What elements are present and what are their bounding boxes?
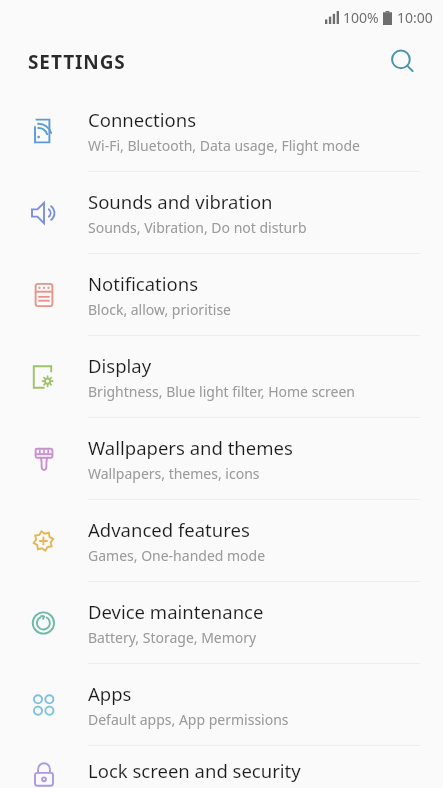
button[interactable]: Search xyxy=(381,40,425,84)
staticText: Default apps, App permissions xyxy=(88,710,289,729)
staticText: Block, allow, prioritise xyxy=(88,300,232,319)
button[interactable]: Advanced features xyxy=(0,500,443,581)
staticText: Sounds, Vibration, Do not disturb xyxy=(88,218,307,237)
staticText: 100% xyxy=(343,8,379,27)
staticText: Wi-Fi, Bluetooth, Data usage, Flight mod… xyxy=(88,136,361,155)
staticText: Advanced features xyxy=(88,517,250,542)
staticText: Battery, Storage, Memory xyxy=(88,628,257,647)
button[interactable]: Notifications xyxy=(0,254,443,335)
staticText: Wallpapers, themes, icons xyxy=(88,464,260,483)
staticText: Device maintenance xyxy=(88,599,264,624)
staticText: Sounds and vibration xyxy=(88,189,273,214)
staticText: Apps xyxy=(88,681,132,706)
staticText: Lock screen and security xyxy=(88,758,301,783)
staticText: 10:00 xyxy=(397,8,433,27)
staticText: Games, One-handed mode xyxy=(88,546,266,565)
staticText: SETTINGS xyxy=(28,49,126,75)
staticText: Wallpapers and themes xyxy=(88,435,293,460)
staticText: Brightness, Blue light filter, Home scre… xyxy=(88,382,356,401)
button[interactable]: Connections xyxy=(0,90,443,171)
button[interactable]: Lock screen and security xyxy=(0,746,443,788)
button[interactable]: Apps xyxy=(0,664,443,745)
staticText: Display xyxy=(88,353,152,378)
staticText: Connections xyxy=(88,107,197,132)
button[interactable]: Device maintenance xyxy=(0,582,443,663)
button[interactable]: Wallpapers and themes xyxy=(0,418,443,499)
staticText: Notifications xyxy=(88,271,199,296)
button[interactable]: Display xyxy=(0,336,443,417)
button[interactable]: Sounds and vibration xyxy=(0,172,443,253)
